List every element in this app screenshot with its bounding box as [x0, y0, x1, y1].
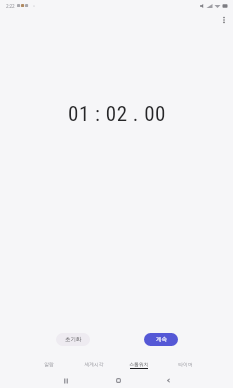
staticText: 계속	[156, 336, 167, 343]
staticText: 초기화	[65, 336, 82, 343]
staticText: 알람	[44, 361, 54, 367]
button[interactable]: 세계시각	[71, 358, 116, 372]
button[interactable]: Recents	[58, 373, 74, 388]
button[interactable]: Back	[160, 373, 176, 388]
button[interactable]: More options	[214, 10, 233, 30]
staticText: 01 : 02 . 00	[68, 102, 166, 127]
button[interactable]: Home	[110, 373, 126, 388]
staticText: 스톱워치	[129, 361, 149, 367]
button[interactable]: 스톱워치	[116, 358, 162, 372]
staticText: 세계시각	[84, 361, 104, 367]
staticText: 타이머	[178, 361, 193, 367]
button[interactable]: 타이머	[162, 358, 208, 372]
button[interactable]: 계속	[144, 333, 178, 346]
button[interactable]: 초기화	[56, 333, 90, 346]
staticText: 2:22	[6, 3, 15, 9]
button[interactable]: 알람	[26, 358, 71, 372]
